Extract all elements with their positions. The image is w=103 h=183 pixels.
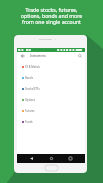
button[interactable]: Recents — [66, 154, 75, 163]
staticText: Funds — [25, 120, 33, 124]
button[interactable]: Instruments — [17, 52, 46, 59]
staticText: Futures — [25, 109, 35, 113]
staticText: Trade stocks, futures, options, bonds an… — [19, 6, 84, 25]
button[interactable]: Stocks/ETFs — [17, 83, 85, 94]
staticText: Options — [25, 98, 35, 102]
button[interactable]: Funds — [17, 116, 85, 127]
button[interactable]: Futures — [17, 105, 85, 116]
button[interactable]: Back — [27, 154, 36, 163]
button[interactable]: Options — [17, 94, 85, 105]
button[interactable]: FX & Metals — [17, 61, 85, 72]
button[interactable]: Bonds — [17, 72, 85, 83]
staticText: Stocks/ETFs — [25, 87, 40, 91]
button[interactable]: Home — [47, 154, 56, 163]
staticText: Instruments — [30, 54, 46, 58]
button[interactable]: Search — [76, 52, 83, 59]
button[interactable]: Home button — [45, 165, 58, 171]
staticText: Bonds — [25, 76, 33, 80]
staticText: FX & Metals — [25, 65, 40, 69]
